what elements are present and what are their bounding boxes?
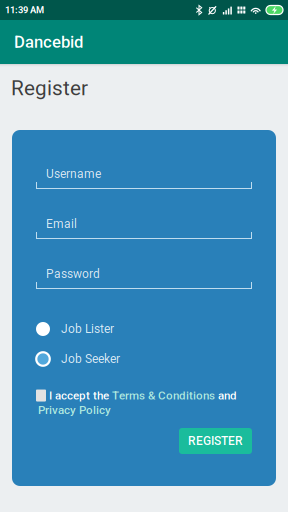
button[interactable]: Job Seeker xyxy=(36,348,252,370)
staticText: Job Lister xyxy=(61,322,114,336)
staticText: Dancebid xyxy=(14,32,83,52)
staticText: Password xyxy=(46,267,100,281)
staticText: REGISTER xyxy=(188,434,243,448)
staticText: 11:39 AM xyxy=(5,5,44,15)
button[interactable]: Password xyxy=(36,266,252,289)
button[interactable]: Job Lister xyxy=(36,318,252,340)
button[interactable]: Username xyxy=(36,166,252,189)
staticText: and xyxy=(215,389,237,402)
staticText: Job Seeker xyxy=(61,352,120,366)
staticText: Register xyxy=(11,76,88,100)
staticText: Username xyxy=(46,167,101,181)
staticText: I accept the xyxy=(46,389,112,402)
button[interactable]: REGISTER xyxy=(179,428,252,454)
button[interactable]: Email xyxy=(36,216,252,239)
staticText: Privacy Policy xyxy=(38,403,111,417)
staticText: Email xyxy=(46,217,77,231)
staticText: Terms & Conditions xyxy=(112,389,215,402)
button[interactable]: I accept the xyxy=(36,388,252,417)
